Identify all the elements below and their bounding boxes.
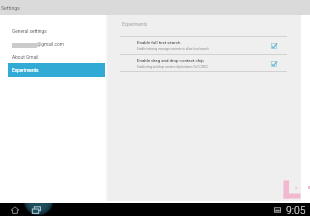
staticText: 9:05 bbox=[286, 204, 306, 216]
staticText: Enable drag and drop contact chip bbox=[137, 58, 204, 63]
button[interactable]: @gmail.com bbox=[0, 37, 105, 51]
staticText: @gmail.com bbox=[37, 42, 64, 48]
staticText: Experiments bbox=[122, 22, 148, 27]
button[interactable]: About Gmail bbox=[0, 50, 105, 64]
staticText: Enable indexing message contents to allo… bbox=[137, 47, 209, 50]
staticText: Enable drag and drop contact chip betwee… bbox=[137, 65, 209, 68]
staticText: Experiments bbox=[12, 68, 39, 74]
button[interactable]: General settings bbox=[0, 24, 105, 38]
button[interactable]: Recent apps bbox=[30, 203, 43, 216]
staticText: Settings bbox=[1, 5, 20, 11]
button[interactable]: Enable drag and drop contact chip bbox=[120, 55, 287, 72]
button[interactable]: Experiments bbox=[8, 63, 105, 77]
staticText: Enable full text search bbox=[137, 40, 181, 45]
button[interactable]: Home bbox=[8, 203, 21, 216]
staticText: About Gmail bbox=[12, 55, 39, 61]
button[interactable]: Enable full text search bbox=[120, 37, 287, 54]
staticText: General settings bbox=[12, 29, 47, 35]
